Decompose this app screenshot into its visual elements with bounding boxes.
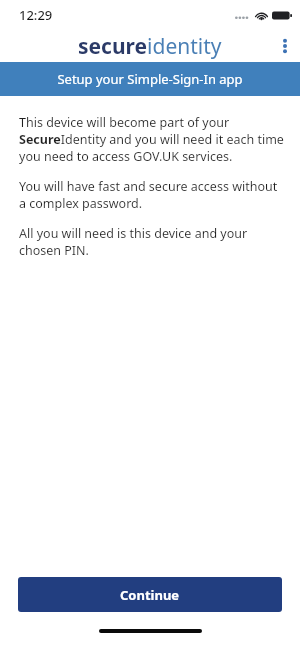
staticText: You will have fast and secure access wit…	[19, 178, 284, 212]
staticText: Setup your Simple-Sign-In app	[57, 70, 243, 88]
button[interactable]: Continue	[18, 577, 282, 612]
staticText: 12:29	[19, 6, 53, 24]
button[interactable]: More options	[270, 31, 300, 61]
staticText: Continue	[120, 586, 180, 604]
staticText: secureidentity	[78, 32, 222, 61]
staticText: All you will need is this device and you…	[19, 225, 284, 259]
staticText: This device will become part of your Sec…	[19, 114, 284, 165]
